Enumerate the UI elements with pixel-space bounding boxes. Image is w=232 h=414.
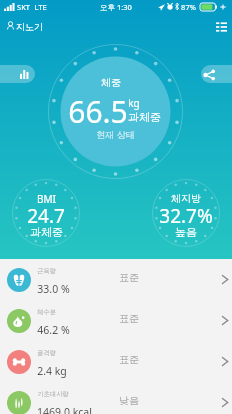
staticText: 체수분 (37, 308, 56, 316)
staticText: 지노기 (16, 21, 43, 32)
staticText: 표준 (119, 353, 139, 366)
staticText: 2.4 kg (37, 364, 67, 378)
staticText: 오후 1:30 (100, 2, 132, 12)
button[interactable]: 기초대사량 (0, 382, 232, 414)
button[interactable]: 골격량 (0, 341, 232, 382)
staticText: SKT (17, 2, 30, 12)
staticText: 골격량 (37, 349, 56, 357)
staticText: LTE (34, 2, 47, 12)
staticText: 66.5 (68, 91, 128, 132)
staticText: 근육량 (37, 267, 56, 275)
staticText: 87% (181, 2, 196, 12)
button[interactable]: 체지방 (152, 180, 220, 248)
staticText: 높음 (175, 225, 197, 239)
button[interactable]: Share (201, 65, 232, 83)
staticText: 현재 상태 (96, 128, 135, 140)
staticText: 과체중 (128, 110, 161, 124)
staticText: 24.7 (27, 203, 65, 229)
button[interactable]: 체수분 (0, 300, 232, 341)
staticText: 표준 (119, 271, 139, 284)
staticText: 33.0 % (37, 282, 70, 296)
staticText: BMI (37, 192, 56, 206)
staticText: 기초대사량 (37, 390, 69, 398)
staticText: 체중 (101, 76, 121, 89)
staticText: 46.2 % (37, 323, 70, 337)
button[interactable]: BMI (12, 180, 80, 248)
staticText: 1469.0 kcal (37, 405, 92, 414)
button[interactable]: Menu (212, 18, 231, 35)
staticText: 낮음 (119, 394, 139, 407)
staticText: 32.7% (159, 203, 213, 229)
staticText: 체지방 (171, 192, 201, 205)
button[interactable]: 근육량 (0, 259, 232, 300)
button[interactable]: Statistics (0, 65, 35, 83)
button[interactable]: Profile (4, 17, 46, 36)
staticText: 표준 (119, 312, 139, 325)
staticText: 과체중 (30, 225, 63, 239)
staticText: kg (128, 96, 140, 110)
